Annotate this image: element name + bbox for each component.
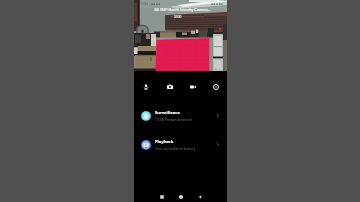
staticText: 11:06 Person detected: [155, 117, 192, 122]
button[interactable]: Home: [175, 191, 186, 202]
button[interactable]: Microphone: [138, 79, 154, 95]
staticText: 10:34: [140, 2, 149, 6]
staticText: Your surveillance history: [155, 146, 196, 151]
button[interactable]: Playback: [137, 133, 224, 156]
staticText: 2000: [174, 15, 182, 19]
button[interactable]: Take screenshot: [162, 79, 178, 95]
staticText: Playback: [155, 139, 174, 145]
button[interactable]: Settings: [208, 79, 224, 95]
button[interactable]: Recents: [156, 191, 167, 202]
staticText: Mi 360° Home Security Camera...: [154, 7, 211, 12]
staticText: Surveillance: [155, 110, 180, 116]
button[interactable]: Back: [194, 191, 205, 202]
staticText: ▪▪ ▪ ▪▪: [211, 2, 223, 6]
button[interactable]: Record video: [185, 79, 201, 95]
button[interactable]: Surveillance: [137, 104, 224, 127]
staticText: ▪▪ ▪▪: [151, 2, 160, 6]
